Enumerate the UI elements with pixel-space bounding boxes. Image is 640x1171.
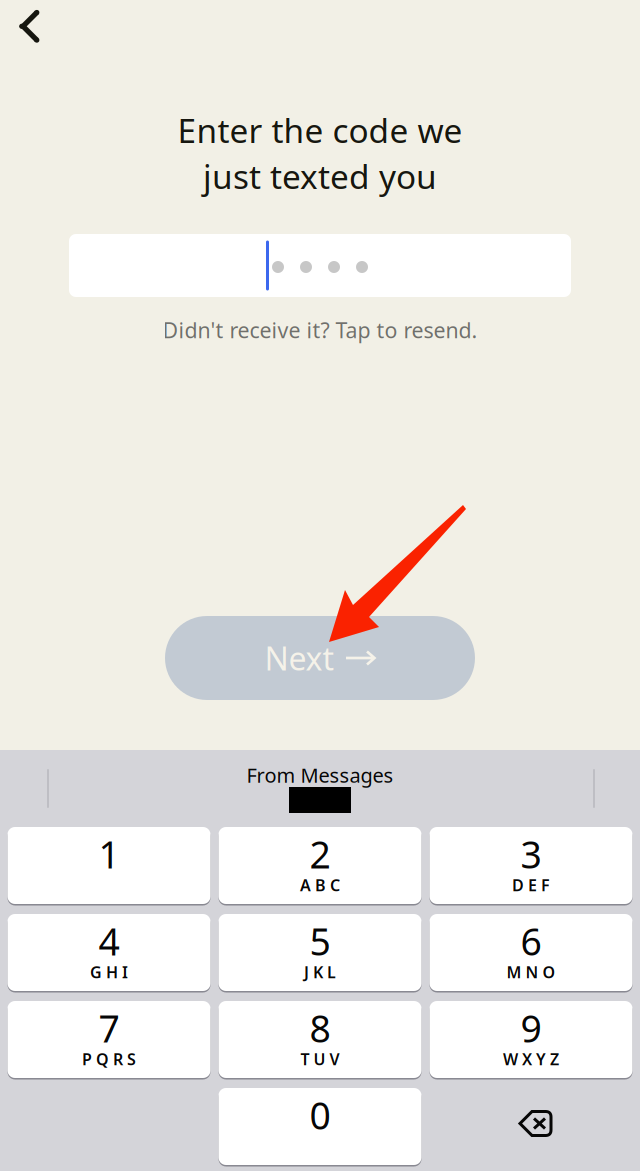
button[interactable]: 2: [218, 827, 421, 906]
button[interactable]: 3: [429, 827, 632, 906]
button[interactable]: Delete: [429, 1088, 632, 1167]
staticText: 2: [309, 829, 330, 879]
staticText: J K L: [304, 961, 336, 983]
staticText: W X Y Z: [503, 1048, 559, 1070]
staticText: Enter the code we: [177, 108, 462, 152]
button[interactable]: Next: [165, 616, 475, 700]
button[interactable]: 5: [218, 914, 421, 993]
staticText: M N O: [506, 961, 555, 983]
button[interactable]: Back: [1, 0, 57, 54]
staticText: 8: [309, 1003, 330, 1053]
staticText: P Q R S: [82, 1048, 136, 1070]
button[interactable]: 6: [429, 914, 632, 993]
staticText: 3: [520, 829, 541, 879]
staticText: From Messages: [246, 762, 393, 788]
staticText: Next: [264, 637, 334, 679]
staticText: A B C: [300, 874, 340, 896]
staticText: G H I: [90, 961, 128, 983]
staticText: 4: [98, 916, 119, 966]
staticText: 0: [309, 1090, 330, 1140]
staticText: 7: [98, 1003, 119, 1053]
staticText: T U V: [300, 1048, 339, 1070]
staticText: 5: [309, 916, 330, 966]
button[interactable]: 7: [7, 1001, 210, 1080]
button[interactable]: 9: [429, 1001, 632, 1080]
staticText: just texted you: [203, 154, 437, 198]
button[interactable]: 0: [218, 1088, 421, 1167]
button[interactable]: 4: [7, 914, 210, 993]
staticText: 9: [520, 1003, 541, 1053]
staticText: 1: [98, 829, 119, 879]
staticText: 6: [520, 916, 541, 966]
button[interactable]: Didn't receive it? Tap to resend.: [0, 313, 640, 347]
staticText: Didn't receive it? Tap to resend.: [162, 316, 477, 344]
button[interactable]: 8: [218, 1001, 421, 1080]
staticText: D E F: [512, 874, 550, 896]
button[interactable]: 1: [7, 827, 210, 906]
